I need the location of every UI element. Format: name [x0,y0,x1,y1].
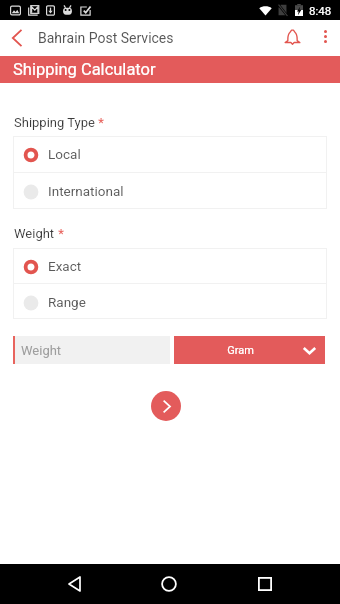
button[interactable]: International [13,173,327,209]
staticText: Weight [14,226,55,241]
button[interactable]: Home [131,564,207,604]
button[interactable]: Recents [227,564,303,604]
button[interactable]: Weight [13,336,170,364]
button[interactable]: Exact [13,248,327,283]
button[interactable]: Gram [174,336,325,364]
staticText: International [48,183,124,199]
staticText: * [55,226,64,241]
staticText: * [95,115,104,130]
staticText: Shipping Calculator [13,60,156,79]
staticText: 8:48 [309,4,332,17]
button[interactable]: Local [13,136,327,172]
staticText: Local [48,146,81,162]
staticText: Exact [48,258,82,274]
staticText: Bahrain Post Services [38,30,174,46]
button[interactable]: More options [310,23,340,53]
button[interactable]: Range [13,284,327,319]
button[interactable]: Back [36,564,112,604]
button[interactable]: Next [151,391,181,421]
staticText: Gram [165,344,316,357]
staticText: Range [48,294,86,310]
button[interactable]: Notifications [274,20,310,56]
staticText: Shipping Type [14,115,95,130]
button[interactable]: Navigate up [0,20,33,56]
staticText: Weight [21,343,62,358]
